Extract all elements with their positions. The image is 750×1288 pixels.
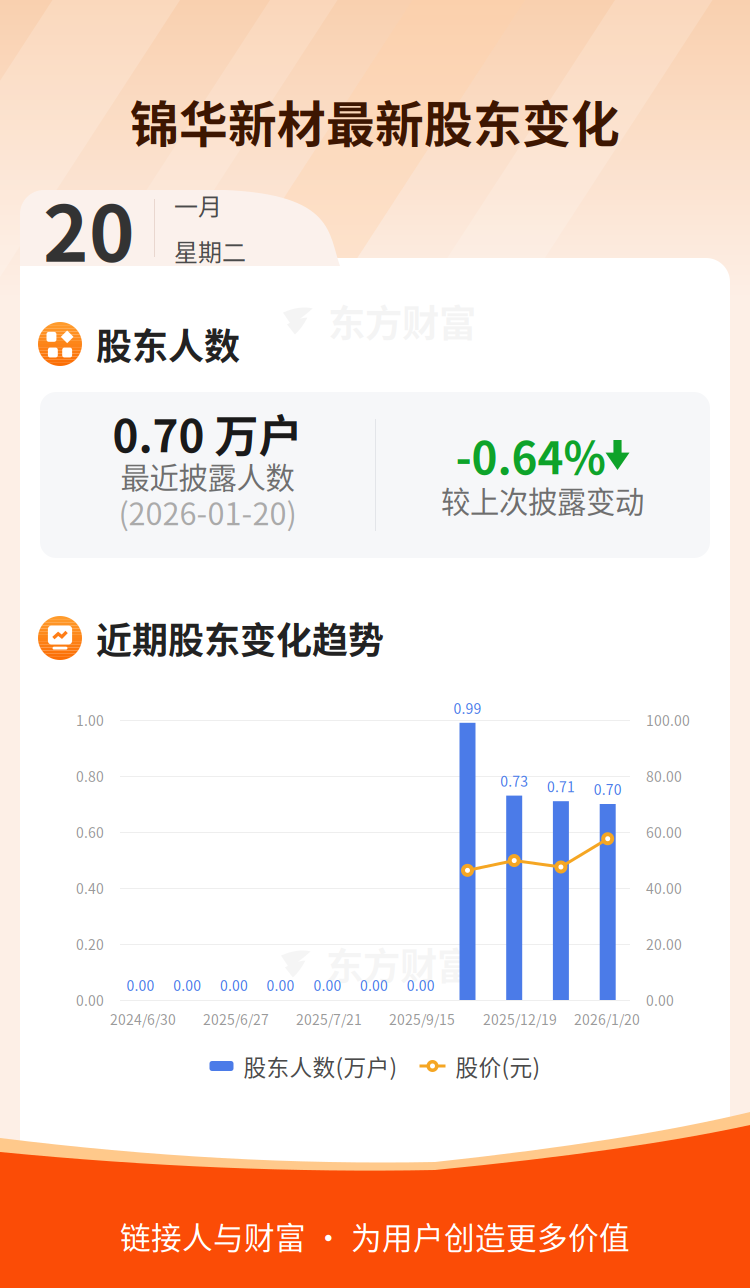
staticText: 东方财富 xyxy=(328,294,476,348)
staticText: 股东人数(万户) xyxy=(243,1050,397,1082)
staticText: 0.00 xyxy=(360,975,388,995)
staticText: 0.80 xyxy=(76,766,104,786)
staticText: 0.20 xyxy=(76,934,104,954)
staticText: 0.00 xyxy=(220,975,248,995)
staticText: 1.00 xyxy=(76,710,104,730)
staticText: -0.64% xyxy=(455,423,605,487)
staticText: 较上次披露变动 xyxy=(441,479,644,521)
staticText: 股价(元) xyxy=(455,1050,540,1082)
staticText: 0.71 xyxy=(547,776,575,796)
staticText: 星期二 xyxy=(174,233,246,268)
staticText: 60.00 xyxy=(646,822,682,842)
staticText: 最近披露人数 xyxy=(120,455,294,497)
staticText: 20 xyxy=(43,172,135,284)
staticText: 一月 xyxy=(174,188,222,222)
staticText: 0.00 xyxy=(407,975,435,995)
staticText: 股东人数 xyxy=(96,318,240,370)
staticText: 2025/6/27 xyxy=(203,1009,269,1029)
staticText: 2026/1/20 xyxy=(574,1009,640,1029)
staticText: 0.00 xyxy=(267,975,295,995)
staticText: (2026-01-20) xyxy=(118,490,296,534)
staticText: 2025/9/15 xyxy=(389,1009,455,1029)
staticText: 0.70 xyxy=(594,779,622,799)
staticText: 近期股东变化趋势 xyxy=(96,612,384,664)
staticText: 0.60 xyxy=(76,822,104,842)
staticText: 2025/7/21 xyxy=(296,1009,362,1029)
staticText: 40.00 xyxy=(646,878,682,898)
staticText: 80.00 xyxy=(646,766,682,786)
staticText: 0.70 万户 xyxy=(112,401,302,465)
staticText: 0.00 xyxy=(173,975,201,995)
staticText: 0.99 xyxy=(453,698,481,718)
staticText: 100.00 xyxy=(646,710,690,730)
staticText: 0.00 xyxy=(313,975,341,995)
staticText: 链接人与财富 · 为用户创造更多价值 xyxy=(120,1214,630,1258)
staticText: 东方财富 xyxy=(326,937,474,991)
staticText: 2025/12/19 xyxy=(483,1009,557,1029)
staticText: 0.40 xyxy=(76,878,104,898)
staticText: 0.00 xyxy=(126,975,154,995)
staticText: 0.73 xyxy=(500,770,528,791)
staticText: 20.00 xyxy=(646,934,682,954)
staticText: 2024/6/30 xyxy=(110,1009,176,1029)
staticText: 0.00 xyxy=(76,990,104,1010)
staticText: 锦华新材最新股东变化 xyxy=(130,86,620,156)
staticText: 0.00 xyxy=(646,990,674,1010)
